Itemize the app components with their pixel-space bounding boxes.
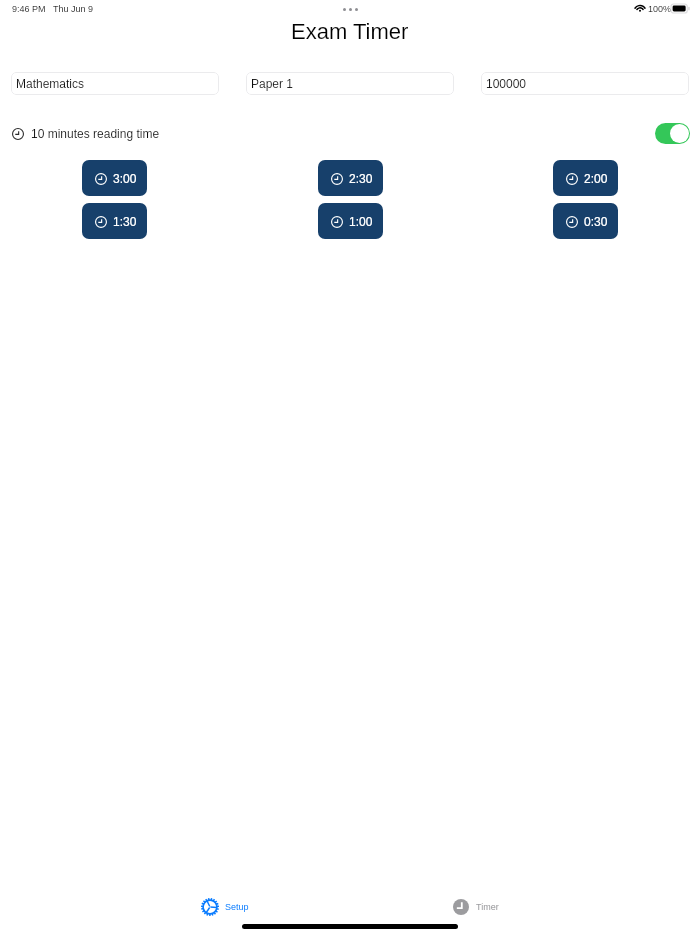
staticText: 0:30 (584, 215, 608, 228)
button[interactable]: 3:00 (82, 160, 147, 196)
button[interactable]: 1:00 (318, 203, 383, 239)
staticText: 2:00 (584, 172, 608, 185)
staticText: 1:00 (349, 215, 373, 228)
staticText: Thu Jun 9 (53, 4, 94, 14)
button[interactable]: 2:00 (553, 160, 618, 196)
button[interactable]: Paper 1 (246, 72, 454, 95)
staticText: Paper 1 (251, 77, 294, 90)
staticText: 10 minutes reading time (31, 127, 160, 140)
staticText: 3:00 (113, 172, 137, 185)
staticText: Exam Timer (291, 19, 409, 43)
button[interactable]: 1:30 (82, 203, 147, 239)
staticText: Mathematics (16, 77, 85, 90)
button[interactable]: 100000 (481, 72, 689, 95)
button[interactable]: Setup (187, 887, 263, 927)
staticText: 9:46 PM (12, 4, 46, 14)
staticText: Setup (225, 902, 249, 912)
button[interactable]: 2:30 (318, 160, 383, 196)
staticText: 100% (648, 4, 672, 14)
button[interactable]: 0:30 (553, 203, 618, 239)
staticText: 2:30 (349, 172, 373, 185)
button[interactable]: Mathematics (11, 72, 219, 95)
staticText: 100000 (486, 77, 527, 90)
button[interactable]: Reading time toggle (655, 123, 690, 144)
staticText: Timer (476, 902, 499, 912)
button[interactable]: Timer (439, 887, 513, 927)
staticText: 1:30 (113, 215, 137, 228)
